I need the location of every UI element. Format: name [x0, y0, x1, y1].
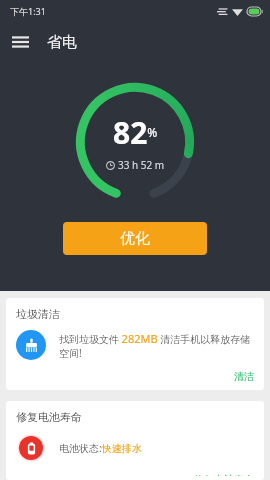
- staticText: 省电: [47, 33, 77, 52]
- staticText: 下午1:31: [10, 5, 46, 17]
- staticText: 找到垃圾文件 282MB 清洁手机以释放存储空间!: [59, 331, 254, 360]
- button[interactable]: Menu: [0, 22, 40, 62]
- button[interactable]: 清洁: [224, 366, 264, 387]
- button[interactable]: 垃圾清洁: [6, 298, 264, 390]
- staticText: 33 h 52 m: [118, 158, 165, 172]
- button[interactable]: 优化: [63, 222, 207, 255]
- staticText: 电池状态:快速排水: [59, 441, 142, 455]
- staticText: 优化: [120, 229, 150, 248]
- button[interactable]: 修复电池寿命: [184, 469, 264, 480]
- staticText: 修复电池寿命: [194, 473, 254, 476]
- button[interactable]: 修复电池寿命: [6, 401, 264, 480]
- staticText: 垃圾清洁: [16, 307, 60, 321]
- staticText: 清洁: [234, 370, 254, 383]
- staticText: 修复电池寿命: [16, 410, 82, 424]
- staticText: 82%: [113, 112, 158, 153]
